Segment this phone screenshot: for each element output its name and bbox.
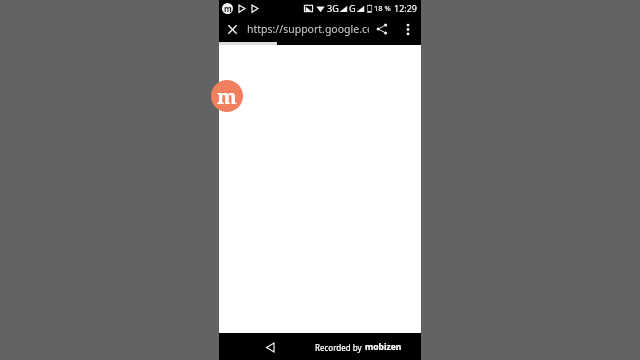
button[interactable]: Close: [219, 16, 245, 42]
staticText: m: [224, 3, 232, 14]
button[interactable]: Share: [369, 16, 395, 42]
staticText: mobizen: [365, 341, 402, 353]
button[interactable]: More options: [395, 16, 421, 42]
staticText: Recorded by: [315, 342, 362, 353]
staticText: m: [217, 83, 237, 110]
staticText: G: [349, 2, 356, 14]
button[interactable]: Back: [257, 334, 283, 360]
staticText: 12:29: [394, 2, 418, 14]
staticText: 18 %: [374, 3, 391, 13]
staticText: 3G: [327, 2, 339, 14]
staticText: https://support.google.com: [247, 22, 369, 36]
